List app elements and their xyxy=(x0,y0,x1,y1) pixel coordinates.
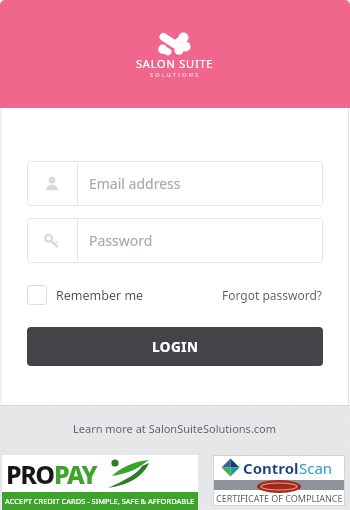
staticText: Password xyxy=(89,231,153,250)
button[interactable]: Forgot password? xyxy=(222,287,323,303)
staticText: PRO xyxy=(6,457,54,491)
staticText: Control xyxy=(243,458,299,478)
button[interactable]: PRO xyxy=(2,455,198,510)
staticText: ACCEPT CREDIT CARDS - SIMPLE, SAFE & AFF… xyxy=(5,496,195,506)
staticText: LOGIN xyxy=(152,338,199,356)
staticText: PAY xyxy=(54,457,97,491)
button[interactable] xyxy=(27,285,47,305)
staticText: CERTIFICATE OF COMPLIANCE xyxy=(216,492,343,504)
staticText: SALON SUITE xyxy=(136,56,214,71)
button[interactable]: LOGIN xyxy=(27,327,323,366)
staticText: Scan xyxy=(299,458,333,478)
staticText: Learn more at SalonSuiteSolutions.com xyxy=(73,421,277,436)
staticText: Remember me xyxy=(56,287,144,304)
button[interactable]: Email address xyxy=(27,161,323,206)
button[interactable]: Control xyxy=(213,455,345,506)
staticText: Email address xyxy=(89,174,181,193)
staticText: Forgot password? xyxy=(222,287,323,303)
staticText: SOLUTIONS xyxy=(150,71,201,78)
button[interactable]: Learn more at SalonSuiteSolutions.com xyxy=(73,421,277,436)
button[interactable]: Password xyxy=(27,218,323,263)
